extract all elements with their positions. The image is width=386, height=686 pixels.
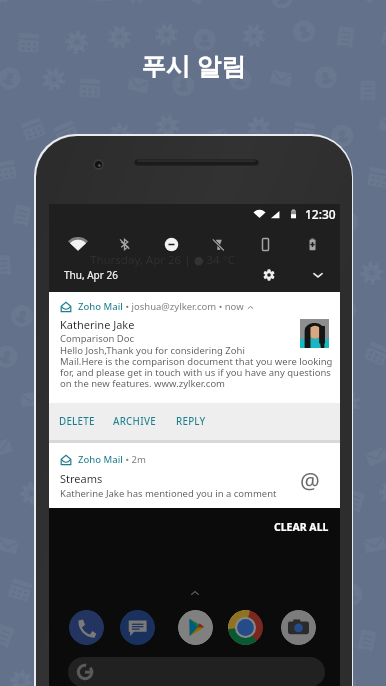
button[interactable]: DELETE — [53, 408, 101, 435]
button[interactable]: Flashlight off — [195, 231, 242, 257]
staticText: Katherine Jake — [60, 317, 135, 332]
staticText: • joshua@zylker.com • now — [123, 300, 244, 313]
button[interactable]: Auto rotate — [242, 231, 289, 257]
button[interactable]: Settings — [258, 264, 279, 285]
button[interactable]: CLEAR ALL — [263, 514, 340, 540]
button[interactable]: Messages — [120, 610, 155, 645]
button[interactable]: All apps — [186, 584, 204, 602]
button[interactable]: ARCHIVE — [107, 408, 162, 435]
staticText: • 2m — [123, 453, 146, 466]
staticText: 푸시 알림 — [141, 49, 246, 82]
button[interactable]: Zoho Mail — [49, 443, 340, 509]
button[interactable]: Zoho Mail — [49, 292, 340, 404]
staticText: @ — [300, 465, 320, 495]
staticText: Zoho Mail — [78, 300, 123, 313]
staticText: 12:30 — [305, 206, 336, 222]
button[interactable]: Expand — [307, 264, 328, 285]
staticText: ARCHIVE — [113, 415, 156, 428]
button[interactable]: Battery saver — [289, 231, 336, 257]
button[interactable]: REPLY — [170, 408, 212, 435]
staticText: Comparison Doc Hello Josh,Thank you for … — [60, 332, 333, 390]
button[interactable]: Bluetooth off — [101, 231, 148, 257]
button[interactable]: Wi-Fi — [54, 231, 101, 257]
staticText: Streams — [60, 471, 103, 486]
staticText: DELETE — [59, 415, 95, 428]
button[interactable]: Chrome — [228, 610, 263, 645]
button[interactable]: Play Store — [178, 610, 213, 645]
button[interactable] — [68, 657, 325, 686]
staticText: Katherine Jake has mentioned you in a co… — [60, 487, 277, 500]
staticText: Zoho Mail — [78, 453, 123, 466]
button[interactable]: Do not disturb — [148, 231, 195, 257]
staticText: Thu, Apr 26 — [64, 268, 118, 282]
button[interactable]: Phone — [69, 610, 104, 645]
staticText: Thursday, Apr 26 | ● 34 °C — [90, 252, 235, 268]
staticText: REPLY — [176, 415, 206, 428]
button[interactable]: Camera — [281, 610, 316, 645]
